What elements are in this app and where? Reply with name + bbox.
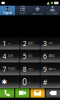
staticText: 7 (2, 65, 6, 74)
staticText: PQRS (8, 67, 15, 71)
button[interactable]: 8 (20, 63, 40, 75)
button[interactable]: Favorites (30, 6, 45, 16)
staticText: # (43, 78, 47, 86)
staticText: Contacts (47, 12, 58, 15)
staticText: 5 (23, 52, 27, 61)
staticText: 6 (43, 52, 47, 61)
staticText: WXYZ (48, 67, 56, 71)
button[interactable]: 2 (20, 37, 40, 49)
staticText: TUV (28, 67, 33, 71)
staticText: ✱ (1, 78, 7, 86)
button[interactable]: Logs (15, 6, 30, 16)
staticText: Keypad (3, 11, 12, 15)
staticText: Logs (19, 11, 25, 15)
staticText: ABC (28, 42, 34, 45)
button[interactable]: Delete (46, 88, 60, 98)
button[interactable]: Contacts (45, 6, 60, 16)
button[interactable]: 5 (20, 50, 40, 62)
button[interactable]: 7 (0, 63, 20, 75)
staticText: JKL (28, 54, 32, 58)
staticText: 9 (43, 65, 47, 74)
button[interactable]: Call (0, 88, 14, 98)
staticText: + (28, 79, 30, 85)
staticText: ∞ (8, 42, 10, 45)
staticText: 3 (43, 39, 47, 48)
button[interactable]: 3 (40, 37, 60, 49)
staticText: 2 (23, 39, 27, 48)
staticText: 4 (2, 52, 6, 61)
button[interactable]: 0 (20, 76, 40, 88)
staticText: DEF (48, 42, 52, 45)
button[interactable]: Video call (15, 88, 29, 98)
staticText: MNO (48, 54, 54, 58)
staticText: GHI (8, 54, 13, 58)
button[interactable]: Keypad (0, 6, 15, 16)
staticText: Favorites (32, 12, 43, 15)
button[interactable]: ✱ (0, 76, 20, 88)
button[interactable]: Message (30, 88, 45, 98)
button[interactable]: # (40, 76, 60, 88)
button[interactable]: 4 (0, 50, 20, 62)
button[interactable]: 9 (40, 63, 60, 75)
staticText: 1 (2, 39, 6, 48)
staticText: 0 (22, 77, 27, 87)
button[interactable]: 1 (0, 37, 20, 49)
button[interactable]: 6 (40, 50, 60, 62)
staticText: 8 (23, 65, 27, 74)
